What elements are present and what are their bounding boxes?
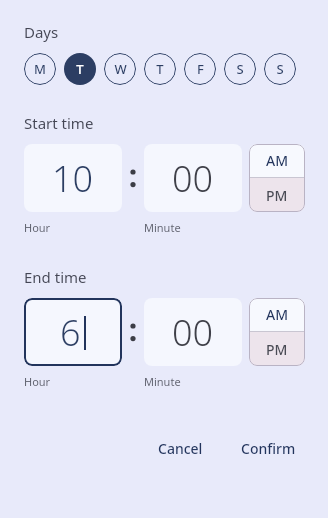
staticText: T [76, 60, 84, 78]
button[interactable]: 00 [144, 144, 242, 212]
button[interactable]: Wednesday [104, 53, 136, 85]
button[interactable]: AM [249, 298, 305, 331]
button[interactable]: 00 [144, 298, 242, 366]
button[interactable]: PM [249, 178, 305, 212]
button[interactable]: 10 [24, 144, 122, 212]
staticText: F [197, 60, 204, 78]
button[interactable]: Cancel [146, 431, 215, 466]
staticText: S [276, 60, 284, 78]
staticText: AM [266, 151, 289, 170]
staticText: Confirm [241, 439, 296, 458]
staticText: End time [24, 267, 87, 287]
button[interactable]: Sunday [264, 53, 296, 85]
button[interactable]: 6 [24, 298, 122, 366]
staticText: PM [266, 186, 288, 205]
staticText: Hour [24, 220, 51, 235]
button[interactable]: Confirm [229, 431, 308, 466]
staticText: Cancel [158, 439, 203, 458]
staticText: S [236, 60, 244, 78]
staticText: PM [266, 340, 288, 359]
staticText: Minute [144, 374, 181, 389]
button[interactable]: Monday [24, 53, 56, 85]
button[interactable]: Tuesday [64, 53, 96, 85]
staticText: W [114, 60, 127, 78]
staticText: Hour [24, 374, 51, 389]
button[interactable]: PM [249, 332, 305, 366]
button[interactable]: Saturday [224, 53, 256, 85]
button[interactable]: AM [249, 144, 305, 177]
staticText: 6 [60, 308, 81, 357]
staticText: 10 [52, 154, 94, 203]
button[interactable]: Thursday [144, 53, 176, 85]
staticText: 00 [172, 308, 214, 357]
button[interactable]: Friday [184, 53, 216, 85]
staticText: Days [24, 22, 59, 42]
staticText: T [156, 60, 164, 78]
staticText: M [34, 60, 46, 78]
staticText: 00 [172, 154, 214, 203]
staticText: Minute [144, 220, 181, 235]
staticText: Start time [24, 113, 94, 133]
staticText: AM [266, 305, 289, 324]
